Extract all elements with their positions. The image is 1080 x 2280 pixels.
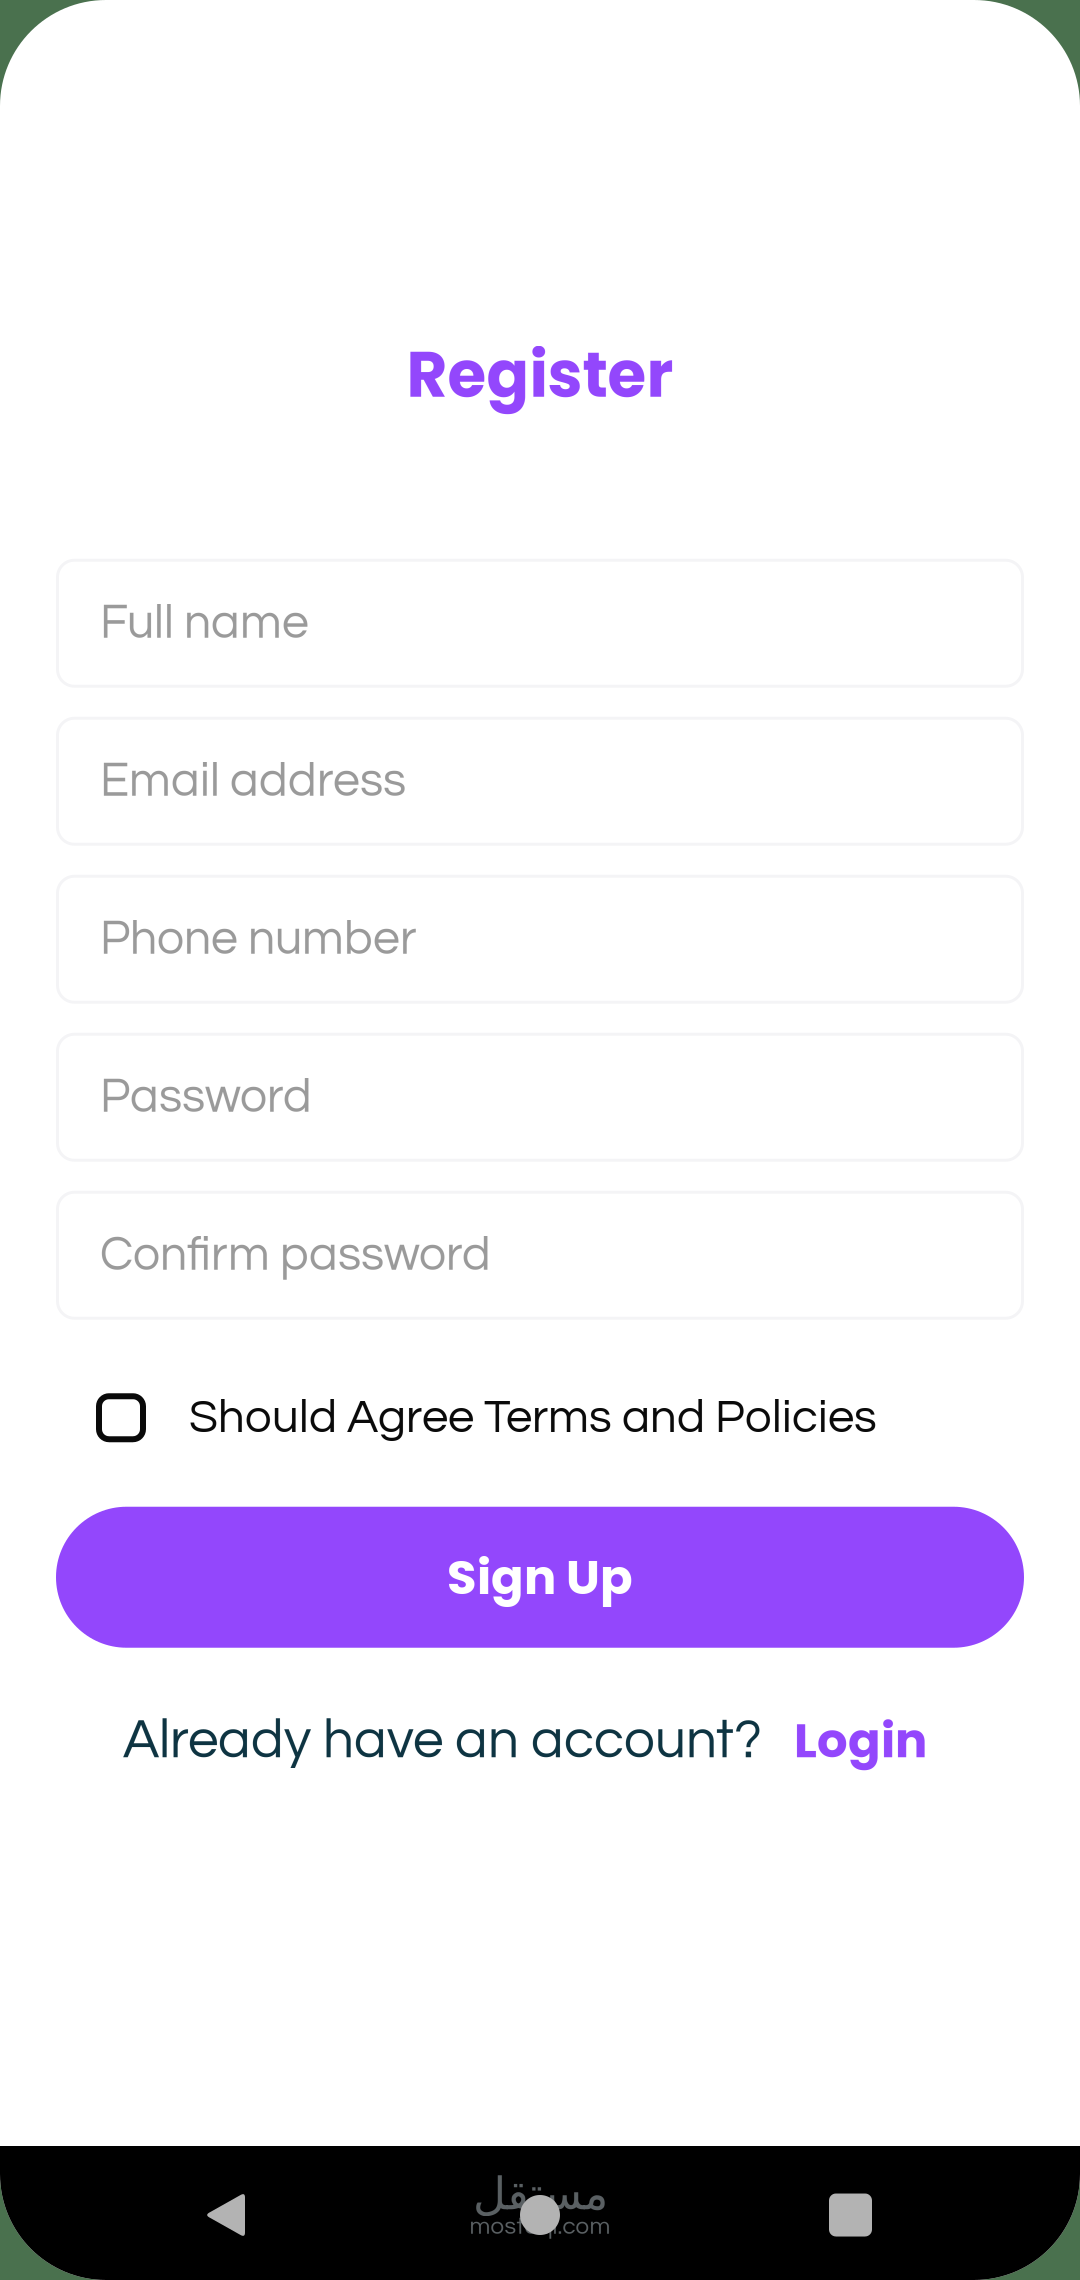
button[interactable]: Confirm password [56,1191,1024,1320]
button[interactable]: Home [520,2195,560,2235]
button[interactable]: Recent apps [829,2193,872,2236]
button[interactable]: Email address [56,717,1024,846]
staticText: Email address [100,756,406,806]
staticText: Full name [100,598,309,648]
staticText: Phone number [100,914,417,964]
staticText: Password [100,1072,312,1122]
staticText: Login [794,1707,927,1774]
button[interactable]: Phone number [56,875,1024,1004]
staticText: Register [406,331,673,419]
button[interactable]: Back [205,2192,245,2237]
staticText: مستقل [472,2167,607,2220]
staticText: Already have an account? [123,1712,762,1769]
staticText: Sign Up [447,1544,633,1611]
button[interactable]: Login [794,1707,927,1774]
staticText: mostaql.com [469,2214,610,2239]
staticText: Should Agree Terms and Policies [189,1393,877,1442]
button[interactable]: Sign Up [56,1507,1024,1648]
button[interactable]: Full name [56,559,1024,688]
button[interactable]: Should Agree Terms and Policies [0,1393,1080,1443]
button[interactable]: Password [56,1033,1024,1162]
staticText: Confirm password [100,1230,491,1280]
